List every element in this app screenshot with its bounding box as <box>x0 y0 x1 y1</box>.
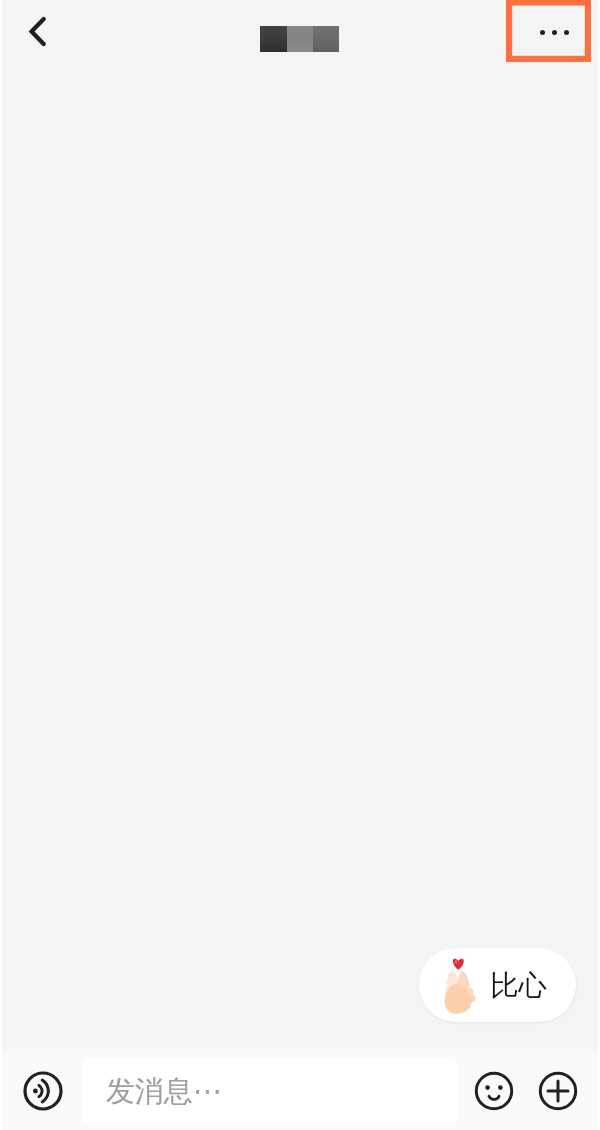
button[interactable]: More <box>534 1067 582 1115</box>
button[interactable]: Emoji <box>470 1067 518 1115</box>
staticText: 比心 <box>490 968 547 1004</box>
button[interactable]: Voice message <box>19 1067 67 1115</box>
button[interactable]: More options <box>506 0 591 62</box>
button[interactable]: Back <box>6 0 68 62</box>
staticText: 发消息⋯ <box>106 1073 222 1110</box>
button[interactable]: 发消息⋯ <box>81 1058 458 1125</box>
button[interactable]: 比心 <box>419 948 576 1022</box>
